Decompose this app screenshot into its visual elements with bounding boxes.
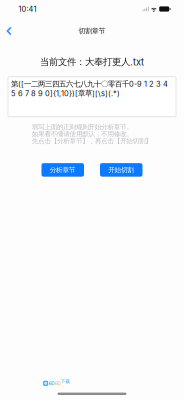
staticText: 先点击【分析章节】，再点击【开始切割】 xyxy=(32,137,152,145)
button[interactable]: Back xyxy=(0,23,19,39)
staticText: 填写上面的正则规则开始分析章节。 xyxy=(32,123,133,131)
staticText: 60 xyxy=(55,380,60,387)
staticText: 第([一二两三四五六七八九十〇零百千0-9 1 2 3 4 xyxy=(11,79,168,89)
staticText: 60 xyxy=(49,380,54,387)
staticText: ··· xyxy=(61,384,64,388)
staticText: 开始切割 xyxy=(108,166,134,174)
staticText: 分析章节 xyxy=(50,166,76,174)
button[interactable]: 分析章节 xyxy=(41,163,84,177)
staticText: 10:41 xyxy=(18,4,36,13)
staticText: 切割章节 xyxy=(78,27,105,35)
staticText: 如果看不懂请使用默认，不用修改。 xyxy=(32,130,133,138)
button[interactable]: 开始切割 xyxy=(100,163,142,177)
staticText: 5 6 7 8 9 0]{1,10})[章草][\s](.*) xyxy=(11,89,120,98)
staticText: 下载 xyxy=(61,379,71,384)
staticText: 当前文件：大奉打更人.txt xyxy=(40,56,144,68)
